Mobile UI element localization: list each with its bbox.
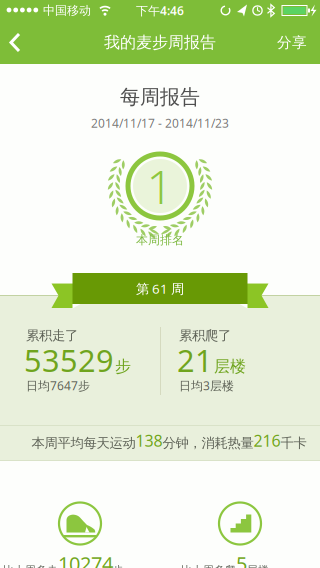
staticText: 分享 bbox=[277, 33, 307, 51]
staticText: 本周排名 bbox=[136, 233, 184, 247]
staticText: 中国移动 bbox=[43, 3, 91, 18]
staticText: 步 bbox=[113, 564, 124, 568]
staticText: 日均3层楼 bbox=[179, 377, 234, 393]
staticText: 累积走了 bbox=[26, 327, 78, 344]
staticText: 比上周多走 bbox=[3, 564, 58, 568]
staticText: 我的麦步周报告 bbox=[104, 33, 216, 52]
staticText: 分钟，消耗热量 bbox=[162, 435, 253, 451]
staticText: 层楼 bbox=[247, 564, 269, 568]
staticText: 层楼 bbox=[214, 357, 246, 376]
button[interactable]: 分享 bbox=[277, 33, 307, 51]
staticText: 5 bbox=[236, 550, 247, 568]
staticText: 53529 bbox=[24, 340, 114, 380]
staticText: 累积爬了 bbox=[179, 327, 231, 344]
staticText: 下午4:46 bbox=[136, 2, 184, 18]
staticText: 138 bbox=[135, 430, 162, 451]
staticText: 1 bbox=[146, 155, 173, 217]
staticText: 2014/11/17 - 2014/11/23 bbox=[91, 115, 229, 131]
staticText: 216 bbox=[253, 430, 280, 451]
staticText: 步 bbox=[115, 357, 131, 376]
staticText: 10274 bbox=[58, 550, 113, 568]
staticText: 本周平均每天运动 bbox=[31, 435, 135, 451]
staticText: 第 61 周 bbox=[136, 280, 184, 297]
staticText: 每周报告 bbox=[120, 85, 200, 109]
button[interactable]: 返回 bbox=[0, 20, 30, 64]
staticText: 日均7647步 bbox=[26, 377, 90, 393]
staticText: 21 bbox=[177, 340, 213, 380]
staticText: 比上周多爬 bbox=[181, 564, 236, 568]
staticText: 千卡 bbox=[280, 435, 306, 451]
